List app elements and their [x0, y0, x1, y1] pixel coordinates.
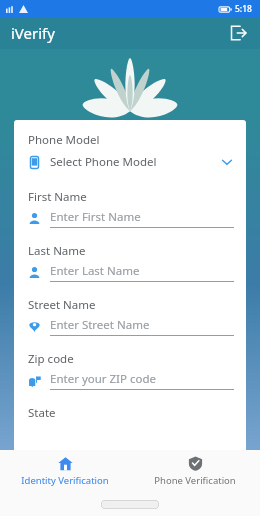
staticText: Select Phone Model	[50, 154, 157, 170]
staticText: Identity Verification	[21, 474, 109, 487]
staticText: Last Name	[28, 243, 86, 259]
staticText: State	[28, 405, 56, 421]
button[interactable]: Select Phone Model	[28, 151, 234, 173]
button[interactable]: Last Name	[28, 243, 234, 282]
staticText: Enter Last Name	[50, 263, 140, 279]
staticText: 5:18	[235, 3, 252, 15]
staticText: iVerify	[11, 23, 55, 43]
staticText: Phone Model	[28, 132, 100, 148]
button[interactable]: Street Name	[28, 297, 234, 336]
button[interactable]: First Name	[28, 189, 234, 228]
staticText: Enter your ZIP code	[50, 371, 157, 387]
staticText: Enter Street Name	[50, 317, 150, 333]
staticText: Enter First Name	[50, 209, 141, 225]
button[interactable]: Log out	[225, 20, 251, 46]
button[interactable]: Zip code	[28, 351, 234, 390]
staticText: Street Name	[28, 297, 96, 313]
button[interactable]: Phone Verification	[130, 450, 260, 493]
button[interactable]: Identity Verification	[0, 450, 130, 493]
staticText: Phone Verification	[154, 474, 236, 487]
staticText: Zip code	[28, 351, 74, 367]
staticText: First Name	[28, 189, 87, 205]
